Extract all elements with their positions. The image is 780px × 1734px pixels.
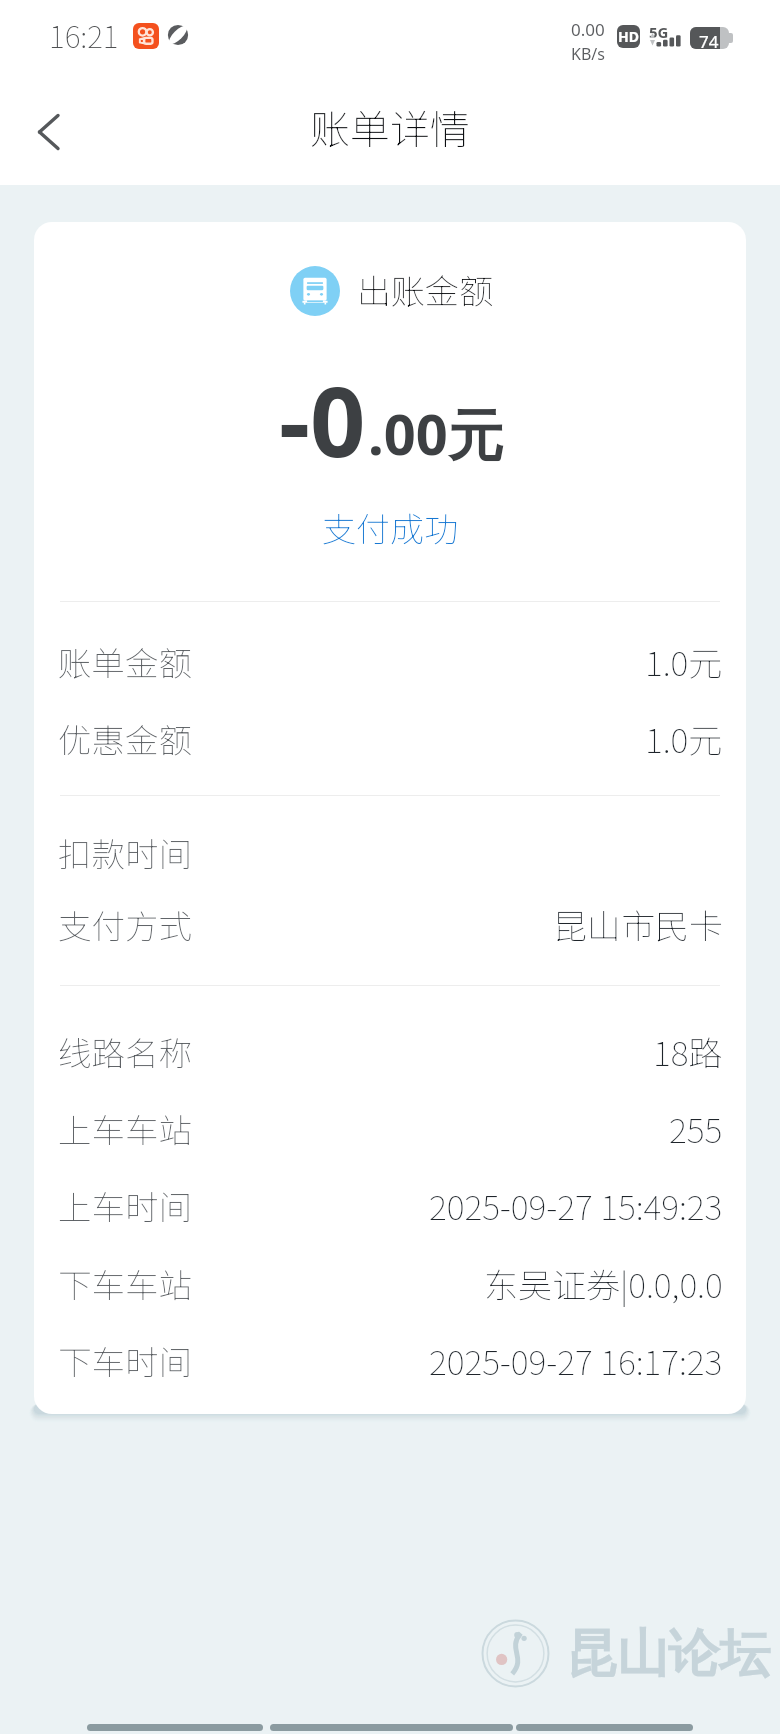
button[interactable]: 账单金额 — [34, 622, 746, 700]
staticText: 上车时间 — [58, 1181, 192, 1230]
staticText: KB/s — [571, 43, 605, 65]
staticText: 2025-09-27 16:17:23 — [429, 1336, 723, 1385]
staticText: 下车车站 — [58, 1259, 192, 1308]
staticText: 下车时间 — [58, 1336, 192, 1385]
staticText: HD — [618, 27, 639, 46]
staticText: 线路名称 — [58, 1027, 192, 1076]
staticText: 昆山论坛 — [566, 1622, 770, 1686]
staticText: 优惠金额 — [58, 714, 192, 763]
staticText: 18路 — [653, 1027, 723, 1076]
button[interactable]: Back — [516, 1724, 693, 1731]
button[interactable]: Back — [14, 98, 82, 166]
button[interactable]: 下车时间 — [34, 1321, 746, 1399]
staticText: 16:21 — [49, 13, 119, 56]
staticText: -0 — [279, 353, 366, 485]
button[interactable]: 上车时间 — [34, 1166, 746, 1244]
staticText: 1.0元 — [645, 637, 723, 686]
staticText: 东吴证券|0.0,0.0 — [484, 1259, 723, 1308]
staticText: 账单详情 — [0, 98, 780, 156]
staticText: 上车车站 — [58, 1104, 192, 1153]
staticText: 74 — [699, 30, 719, 53]
button[interactable]: 下车车站 — [34, 1244, 746, 1322]
staticText: 5G — [649, 22, 669, 42]
button[interactable]: 支付方式 — [34, 885, 746, 963]
button[interactable]: 扣款时间 — [34, 813, 746, 891]
button[interactable]: 优惠金额 — [34, 699, 746, 777]
button[interactable]: Recents — [87, 1724, 263, 1731]
staticText: .00元 — [368, 395, 504, 471]
staticText: 2025-09-27 15:49:23 — [429, 1181, 723, 1230]
button[interactable]: 上车车站 — [34, 1089, 746, 1167]
staticText: 扣款时间 — [58, 828, 192, 877]
staticText: 支付方式 — [58, 900, 192, 949]
button[interactable]: 线路名称 — [34, 1012, 746, 1090]
staticText: 1.0元 — [645, 714, 723, 763]
staticText: 昆山市民卡 — [553, 900, 723, 949]
staticText: 0.00 — [571, 18, 605, 41]
staticText: 255 — [669, 1104, 723, 1153]
button[interactable]: Home — [270, 1724, 513, 1731]
staticText: 账单金额 — [58, 637, 192, 686]
staticText: 支付成功 — [34, 503, 746, 552]
staticText: 出账金额 — [357, 265, 493, 314]
